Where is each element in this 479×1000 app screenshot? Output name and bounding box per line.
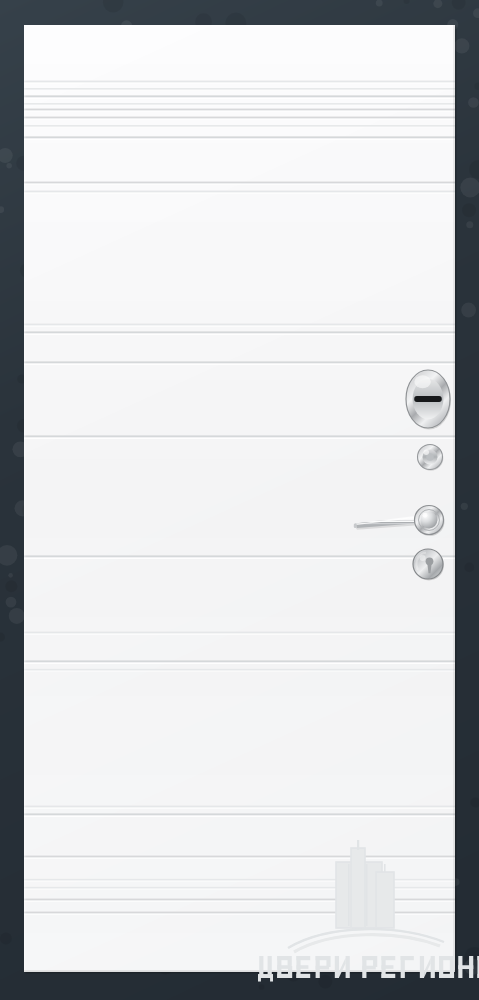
button[interactable]: Door panel preview — [0, 0, 479, 1000]
